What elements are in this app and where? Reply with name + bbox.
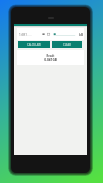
staticText: Result [17,54,84,57]
button[interactable]: 1.681 [17,28,84,40]
staticText: CLEAR [63,43,71,47]
staticText: 0.041GB [17,58,84,62]
button[interactable]: CLEAR [52,41,82,48]
button[interactable]: CALCULATE [18,41,50,48]
staticText: kB [79,33,83,37]
staticText: CALCULATE [27,43,42,47]
staticText: 1.681 [19,33,27,37]
